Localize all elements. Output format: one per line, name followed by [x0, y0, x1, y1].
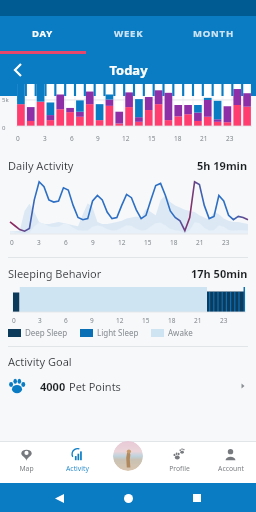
- staticText: Pet Points: [69, 379, 121, 394]
- staticText: 5k: [2, 96, 9, 104]
- staticText: 23: [220, 316, 228, 325]
- staticText: 9: [90, 316, 94, 325]
- staticText: Today: [109, 61, 148, 79]
- staticText: 5h 19min: [197, 158, 248, 173]
- staticText: 23: [226, 134, 234, 143]
- button[interactable]: Back: [49, 488, 69, 508]
- staticText: Account: [218, 464, 244, 473]
- button[interactable]: WEEK: [86, 16, 171, 51]
- staticText: 21: [194, 316, 202, 325]
- staticText: Activity: [66, 464, 89, 473]
- staticText: 18: [168, 316, 176, 325]
- staticText: 6: [64, 316, 68, 325]
- staticText: Sleeping Behavior: [8, 266, 102, 281]
- staticText: MONTH: [193, 27, 234, 40]
- staticText: 17h 50min: [191, 266, 248, 281]
- staticText: 18: [170, 238, 178, 247]
- button[interactable]: Map: [0, 441, 52, 483]
- staticText: Daily Activity: [8, 158, 74, 173]
- staticText: 0: [2, 124, 6, 132]
- staticText: 0: [16, 134, 20, 143]
- staticText: 4000: [40, 379, 69, 394]
- staticText: 3: [37, 238, 41, 247]
- staticText: 15: [148, 134, 156, 143]
- staticText: 9: [91, 238, 95, 247]
- staticText: 15: [144, 238, 152, 247]
- staticText: Map: [19, 464, 34, 473]
- button[interactable]: Account: [205, 441, 256, 483]
- button[interactable]: Back: [6, 58, 30, 82]
- staticText: Light Sleep: [97, 327, 139, 338]
- button[interactable]: DAY: [0, 16, 86, 51]
- staticText: Activity Goal: [8, 354, 72, 369]
- staticText: 12: [122, 134, 130, 143]
- staticText: 15: [142, 316, 150, 325]
- staticText: Deep Sleep: [25, 327, 68, 338]
- staticText: Profile: [169, 464, 190, 473]
- staticText: 9: [96, 134, 100, 143]
- staticText: 6: [64, 238, 68, 247]
- button[interactable]: Home: [118, 488, 138, 508]
- button[interactable]: Recents: [187, 488, 207, 508]
- staticText: 23: [222, 238, 230, 247]
- staticText: 18: [174, 134, 182, 143]
- button[interactable]: Pet profile photo: [113, 441, 143, 471]
- staticText: DAY: [32, 27, 54, 40]
- button[interactable]: Activity: [52, 441, 103, 483]
- button[interactable]: MONTH: [171, 16, 256, 51]
- staticText: WEEK: [114, 27, 144, 40]
- staticText: 21: [200, 134, 208, 143]
- staticText: 0: [12, 316, 16, 325]
- staticText: 6: [70, 134, 74, 143]
- button[interactable]: Profile: [154, 441, 205, 483]
- staticText: 3: [43, 134, 47, 143]
- staticText: Awake: [168, 327, 193, 338]
- staticText: 12: [116, 316, 124, 325]
- button[interactable]: 4000: [0, 371, 256, 401]
- staticText: 12: [118, 238, 126, 247]
- staticText: 0: [10, 238, 14, 247]
- staticText: 3: [38, 316, 42, 325]
- staticText: 21: [196, 238, 204, 247]
